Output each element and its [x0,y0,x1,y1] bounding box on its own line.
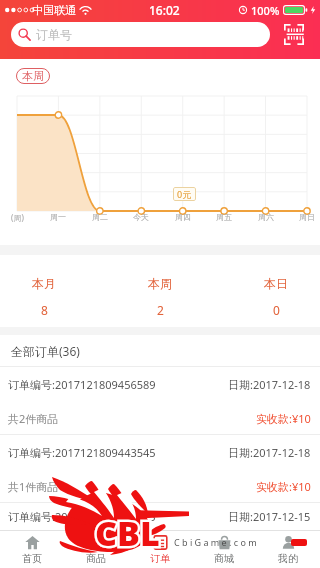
button[interactable]: 订单编号:2017121809443545 [0,434,320,502]
staticText: 订单编号:2017121809435123 [8,509,156,524]
staticText: 实收款:¥10 [256,479,311,494]
staticText: 本周 [22,69,44,83]
staticText: CBL [95,510,160,556]
staticText: 2 [157,302,164,318]
staticText: (周) [11,212,24,223]
staticText: 订单号 [36,27,72,42]
button[interactable]: 本月 [22,255,66,327]
staticText: 0元 [177,188,192,200]
staticText: 周五 [216,212,232,222]
staticText: 商城 [214,552,234,565]
button[interactable]: 订单号 [11,22,270,47]
button[interactable]: 订单编号:2017121809456589 [0,366,320,434]
button[interactable]: 本日 [254,255,298,327]
staticText: 商品 [86,552,106,565]
staticText: 中国联通 [32,3,76,17]
staticText: 16:02 [149,2,180,18]
button[interactable]: 本周 [16,68,50,84]
staticText: 周二 [92,212,108,222]
staticText: 周六 [258,212,274,222]
staticText: 本周 [148,276,172,291]
staticText: 首页 [22,552,42,565]
staticText: 我的 [278,552,298,565]
staticText: 日期:2017-12-15 [228,509,311,524]
button[interactable]: 首页 [0,531,64,568]
button[interactable]: 订单 [128,531,192,568]
staticText: 全部订单(36) [11,343,80,359]
staticText: 8 [41,302,48,318]
button[interactable]: 商城 [192,531,256,568]
button[interactable]: 我的 [256,531,320,568]
staticText: 日期:2017-12-18 [228,445,311,460]
staticText: 订单 [150,552,170,565]
button[interactable]: 本周 [138,255,182,327]
staticText: C b i G a m e . c o m [174,536,257,548]
staticText: 周一 [50,212,66,222]
button[interactable]: Scan barcode [284,24,304,45]
staticText: 本日 [264,276,288,291]
staticText: 0 [273,302,280,318]
staticText: 实收款:¥10 [256,411,311,426]
staticText: 本月 [32,276,56,291]
staticText: 共1件商品 [8,479,59,494]
staticText: 今天 [133,212,149,222]
staticText: 周日 [299,212,315,222]
staticText: 订单编号:2017121809456589 [8,377,156,392]
button[interactable]: 商品 [64,531,128,568]
staticText: 订单编号:2017121809443545 [8,445,156,460]
button[interactable]: 订单编号:2017121809435123 [0,502,320,530]
staticText: 共2件商品 [8,411,59,426]
staticText: 周四 [175,212,191,222]
staticText: 日期:2017-12-18 [228,377,311,392]
staticText: CBL [95,510,160,556]
staticText: 100% [251,3,280,18]
